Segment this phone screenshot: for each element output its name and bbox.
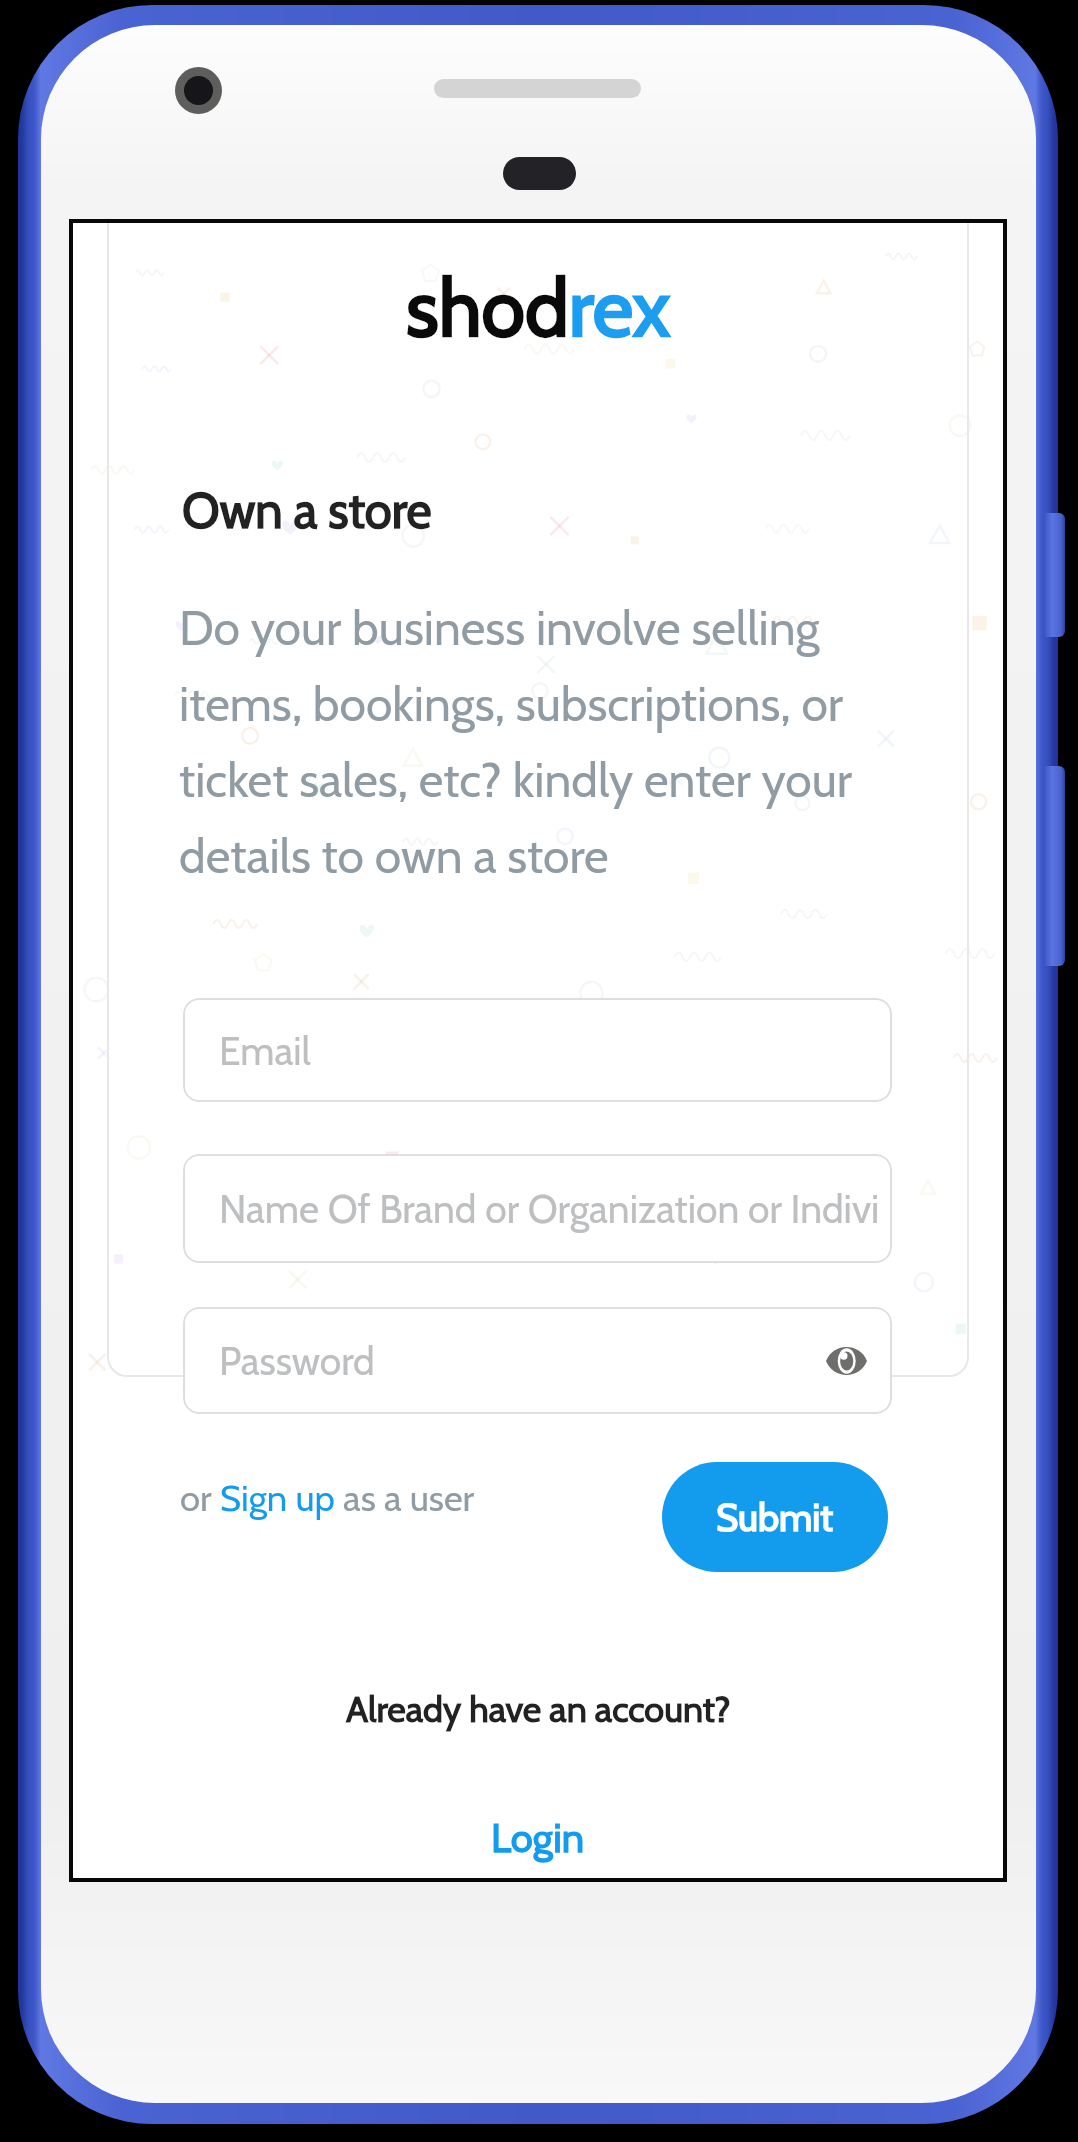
staticText: Login <box>491 1813 585 1862</box>
staticText: Name Of Brand or Organization or Indivi <box>219 1185 880 1232</box>
staticText: Password <box>219 1337 375 1384</box>
staticText: shodrex <box>406 260 671 356</box>
button[interactable]: Email <box>183 998 892 1102</box>
staticText: Already have an account? <box>346 1687 731 1731</box>
staticText: Email <box>219 1027 311 1074</box>
button[interactable]: Name Of Brand or Organization or Indivi <box>183 1154 892 1263</box>
staticText: or Sign up as a user <box>180 1476 475 1520</box>
button[interactable]: Password <box>183 1307 892 1414</box>
button[interactable]: Show password <box>821 1336 871 1386</box>
button[interactable]: Login <box>438 1790 638 1878</box>
button[interactable]: or Sign up as a user <box>180 1462 490 1572</box>
staticText: Do your business involve selling items, … <box>179 599 919 885</box>
staticText: Submit <box>716 1494 834 1540</box>
button[interactable]: Submit <box>662 1462 888 1572</box>
staticText: Own a store <box>182 481 432 541</box>
